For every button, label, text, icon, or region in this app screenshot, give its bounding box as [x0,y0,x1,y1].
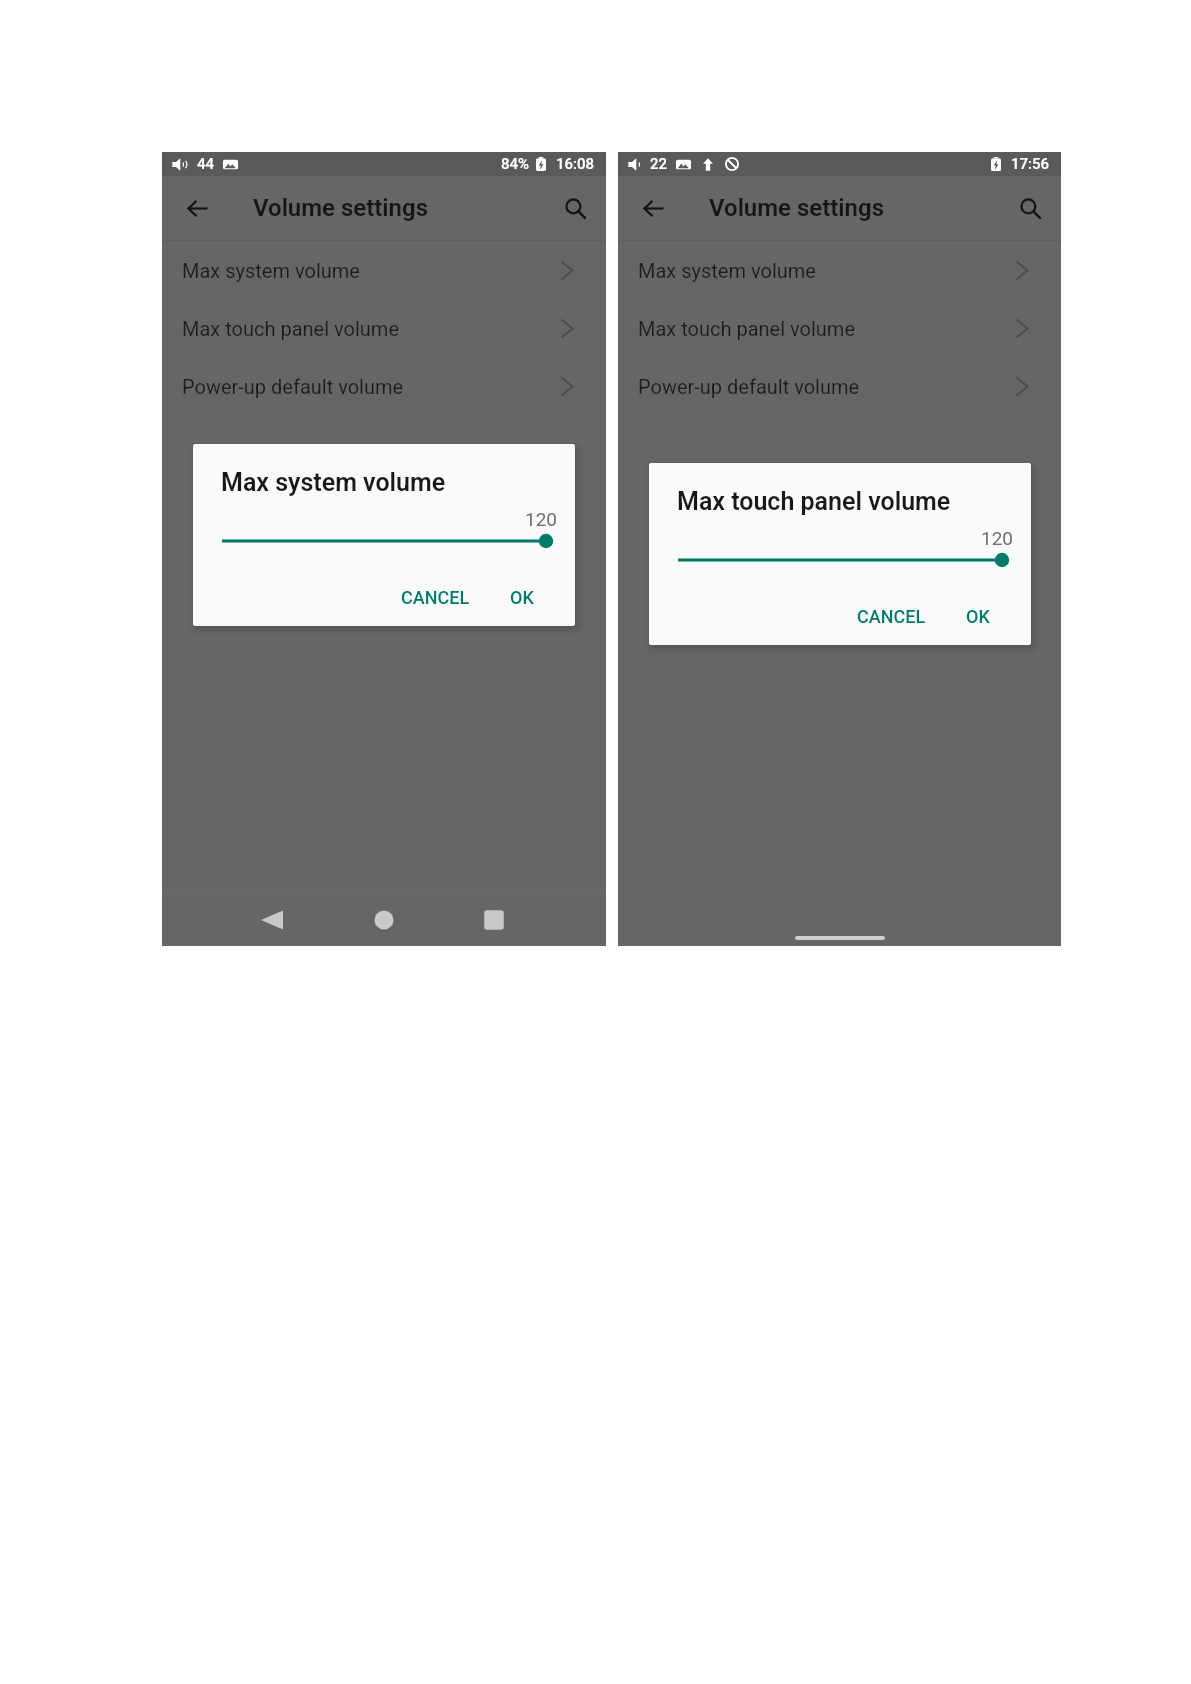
staticText: Max touch panel volume [677,487,951,516]
button[interactable]: Volume slider [649,550,1031,570]
button[interactable]: OK [957,599,999,634]
button[interactable]: Home [363,899,405,941]
button[interactable]: CANCEL [848,599,935,634]
staticText: OK [510,587,534,608]
button[interactable]: Back [179,190,215,226]
button[interactable]: Search [1012,190,1048,226]
staticText: Max touch panel volume [182,317,400,340]
button[interactable]: CANCEL [392,580,479,615]
staticText: 16:08 [556,155,595,173]
staticText: 120 [981,527,1014,549]
button[interactable]: Max system volume [162,241,606,299]
button[interactable]: Search [557,190,593,226]
button[interactable]: Max touch panel volume [618,299,1061,357]
staticText: 22 [650,155,668,173]
button[interactable]: Back [635,190,671,226]
staticText: Max system volume [182,259,360,282]
staticText: 120 [525,508,558,530]
staticText: Max system volume [221,468,446,497]
staticText: Max touch panel volume [638,317,856,340]
staticText: Power-up default volume [638,375,860,398]
staticText: 17:56 [1011,155,1050,173]
button[interactable]: Power-up default volume [618,357,1061,415]
staticText: Volume settings [709,194,884,222]
staticText: CANCEL [857,606,926,627]
staticText: Max system volume [638,259,816,282]
button[interactable]: Power-up default volume [162,357,606,415]
button[interactable]: Volume slider [193,531,575,551]
button[interactable]: OK [501,580,543,615]
staticText: CANCEL [401,587,470,608]
button[interactable]: Max system volume [618,241,1061,299]
button[interactable]: Recent apps [473,899,515,941]
staticText: 44 [197,155,215,173]
button[interactable]: Back [251,899,293,941]
staticText: OK [966,606,990,627]
button[interactable]: Max touch panel volume [162,299,606,357]
staticText: Volume settings [253,194,428,222]
staticText: Power-up default volume [182,375,404,398]
staticText: 84% [501,155,530,173]
